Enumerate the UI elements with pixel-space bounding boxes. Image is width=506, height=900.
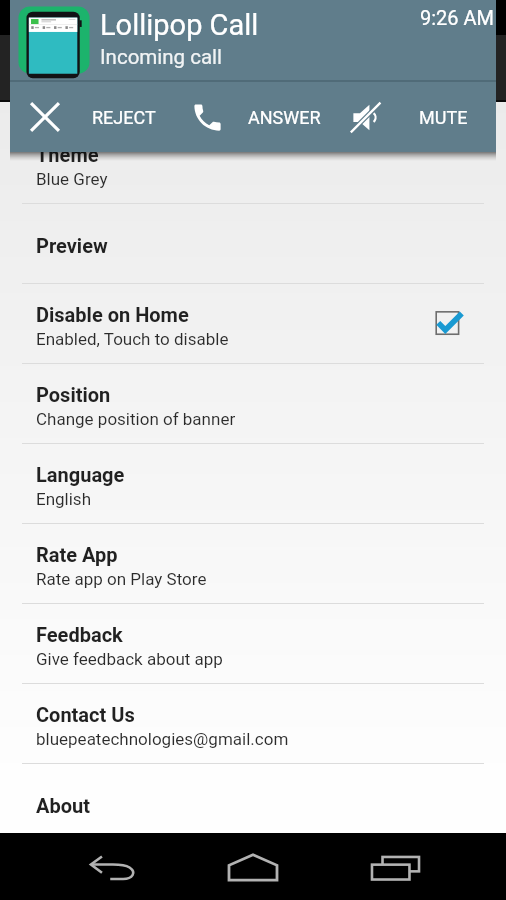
staticText: bluepeatechnologies@gmail.com [36, 729, 289, 749]
button[interactable]: Recent apps [330, 833, 461, 900]
staticText: Preview [36, 234, 108, 257]
staticText: Lollipop Call [100, 8, 259, 42]
button[interactable]: ANSWER [182, 82, 337, 152]
staticText: MUTE [419, 107, 468, 128]
button[interactable]: Disable on Home [0, 284, 506, 364]
button[interactable]: Preview [0, 204, 506, 284]
staticText: Enabled, Touch to disable [36, 329, 229, 349]
staticText: Feedback [36, 623, 123, 646]
staticText: REJECT [92, 107, 156, 128]
staticText: 9:26 AM [420, 6, 495, 29]
staticText: Change position of banner [36, 409, 236, 429]
button[interactable]: About [0, 764, 506, 844]
staticText: Theme [36, 143, 99, 166]
staticText: Blue Grey [36, 169, 108, 189]
staticText: Rate App [36, 543, 118, 566]
button[interactable]: Rate App [0, 524, 506, 604]
button[interactable]: Home [190, 833, 316, 900]
staticText: Position [36, 383, 111, 406]
staticText: Language [36, 463, 125, 486]
staticText: English [36, 489, 92, 509]
button[interactable]: Contact Us [0, 684, 506, 764]
staticText: Rate app on Play Store [36, 569, 207, 589]
button[interactable]: Position [0, 364, 506, 444]
staticText: Incoming call [100, 45, 223, 69]
button[interactable]: REJECT [10, 82, 182, 152]
button[interactable]: Back [45, 833, 181, 900]
staticText: Contact Us [36, 703, 135, 726]
button[interactable]: Theme [0, 124, 506, 204]
button[interactable]: Language [0, 444, 506, 524]
staticText: About [36, 794, 90, 817]
staticText: Disable on Home [36, 303, 189, 326]
staticText: ANSWER [248, 107, 321, 128]
staticText: Give feedback about app [36, 649, 223, 669]
button[interactable]: MUTE [337, 82, 496, 152]
button[interactable]: Feedback [0, 604, 506, 684]
